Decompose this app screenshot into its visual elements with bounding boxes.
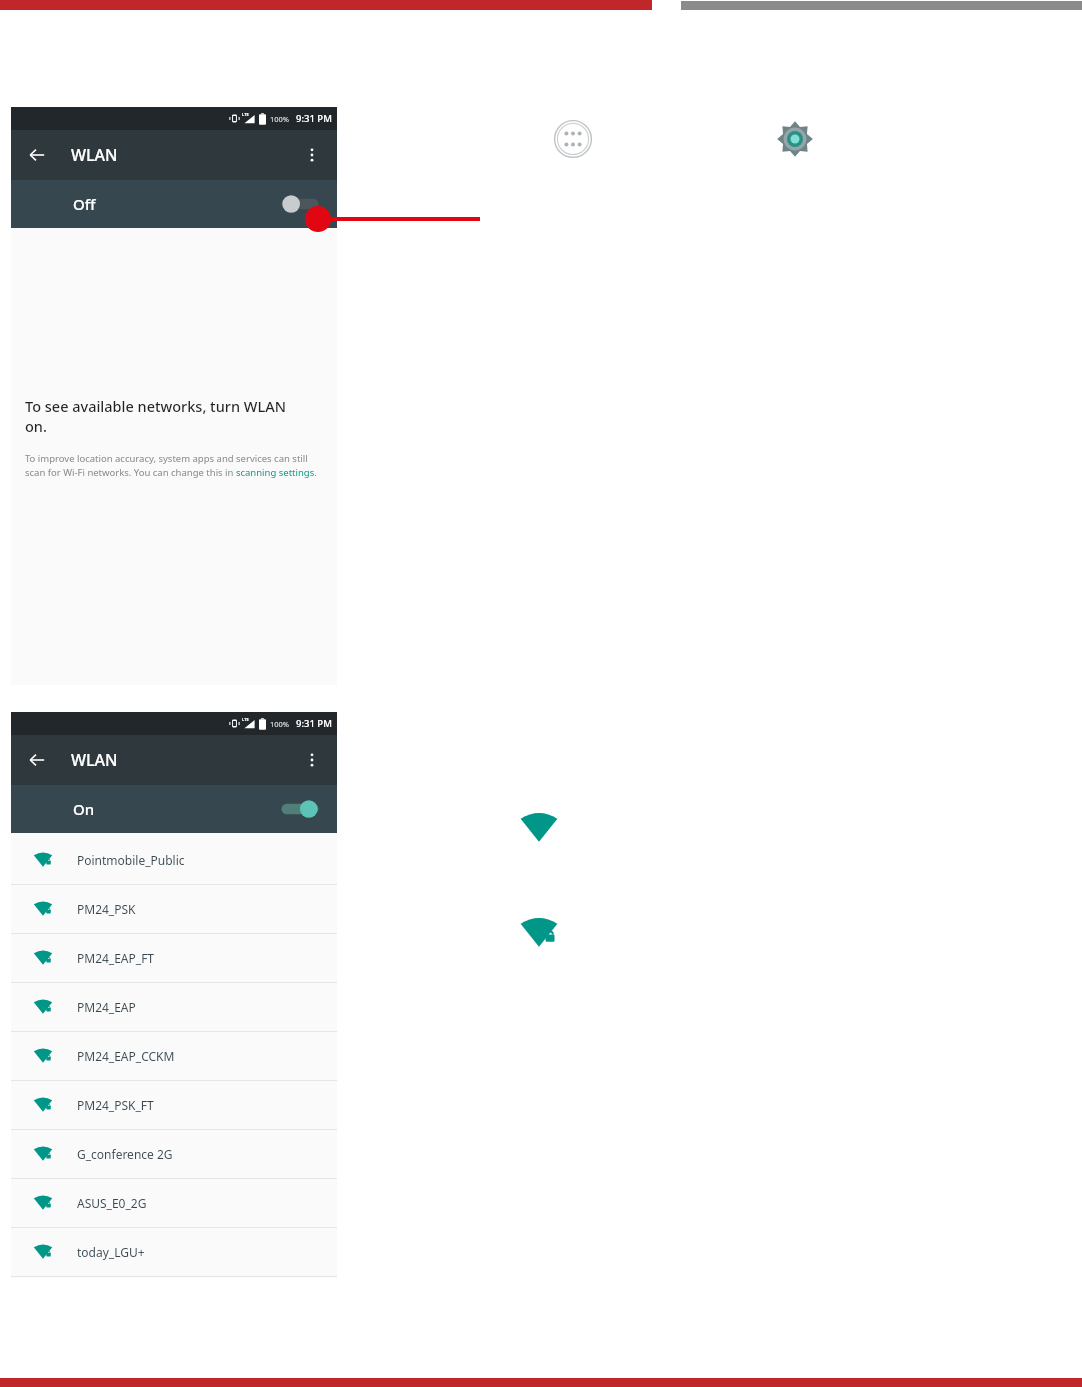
staticText: PM24_EAP_CCKM xyxy=(77,1048,175,1064)
staticText: LTE xyxy=(242,112,249,117)
staticText: WLAN xyxy=(71,144,118,166)
staticText: To improve location accuracy, system app… xyxy=(25,452,323,479)
button[interactable]: On xyxy=(11,785,337,833)
staticText: 9:31 PM xyxy=(296,717,332,730)
button[interactable]: Settings xyxy=(776,120,814,158)
staticText: G_conference 2G xyxy=(77,1146,173,1162)
button[interactable]: PM24_EAP xyxy=(11,983,337,1031)
button[interactable]: Pointmobile_Public xyxy=(11,836,337,884)
staticText: Pointmobile_Public xyxy=(77,852,185,868)
button[interactable]: today_LGU+ xyxy=(11,1228,337,1276)
button[interactable]: More options xyxy=(299,747,325,773)
button[interactable]: PM24_PSK_FT xyxy=(11,1081,337,1129)
button[interactable]: Off xyxy=(11,180,337,228)
button[interactable]: App drawer xyxy=(553,119,593,159)
button[interactable]: Back xyxy=(24,747,50,773)
staticText: ASUS_E0_2G xyxy=(77,1195,147,1211)
staticText: PM24_PSK xyxy=(77,901,136,917)
staticText: To see available networks, turn WLAN on. xyxy=(25,396,286,437)
button[interactable]: PM24_EAP_FT xyxy=(11,934,337,982)
staticText: WLAN xyxy=(71,749,118,771)
button[interactable]: ASUS_E0_2G xyxy=(11,1179,337,1227)
button[interactable]: PM24_PSK xyxy=(11,885,337,933)
button[interactable]: Back xyxy=(24,142,50,168)
button[interactable]: G_conference 2G xyxy=(11,1130,337,1178)
staticText: PM24_EAP xyxy=(77,999,136,1015)
staticText: today_LGU+ xyxy=(77,1244,145,1260)
staticText: 100% xyxy=(270,719,290,729)
staticText: On xyxy=(73,799,95,819)
button[interactable] xyxy=(279,796,321,822)
staticText: PM24_PSK_FT xyxy=(77,1097,154,1113)
staticText: 9:31 PM xyxy=(296,112,332,125)
staticText: Off xyxy=(73,194,96,214)
staticText: 100% xyxy=(270,114,290,124)
button[interactable]: More options xyxy=(299,142,325,168)
button[interactable]: PM24_EAP_CCKM xyxy=(11,1032,337,1080)
staticText: LTE xyxy=(242,717,249,722)
button[interactable] xyxy=(279,191,321,217)
staticText: PM24_EAP_FT xyxy=(77,950,155,966)
